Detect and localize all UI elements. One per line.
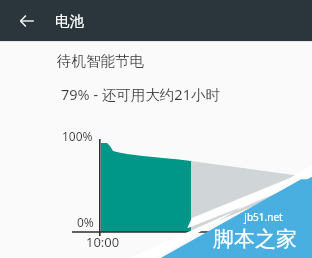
staticText: 0% — [77, 214, 94, 230]
button[interactable]: Back — [12, 6, 42, 36]
staticText: 电池 — [55, 12, 84, 30]
staticText: 79% - 还可用大约21小时 — [61, 84, 220, 104]
staticText: 待机智能节电 — [57, 52, 144, 70]
staticText: 100% — [62, 128, 93, 144]
staticText: 脚本之家 — [213, 226, 297, 252]
staticText: 10:00 — [86, 233, 120, 251]
staticText: jb51.net — [244, 210, 283, 224]
button[interactable]: 待机智能节电 — [0, 42, 312, 80]
